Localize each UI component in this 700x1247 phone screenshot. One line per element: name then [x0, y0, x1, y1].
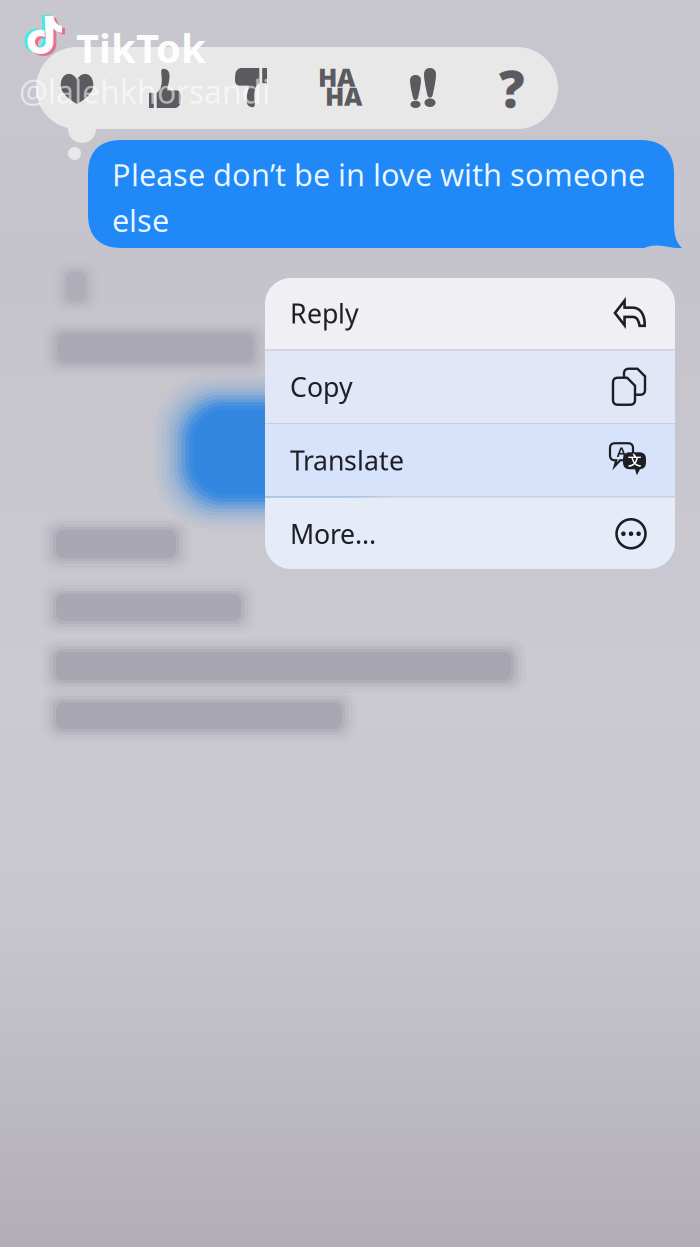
button[interactable]: Translate	[265, 424, 675, 496]
button[interactable]: Thumbs down	[213, 47, 289, 129]
staticText: else	[112, 200, 169, 240]
staticText: More...	[290, 516, 376, 551]
button[interactable]: Thumbs up	[127, 47, 203, 129]
staticText: HA	[325, 79, 362, 113]
staticText: ?	[499, 54, 525, 122]
staticText: @lalehkhorsandi	[19, 70, 270, 112]
staticText: 文	[628, 453, 641, 469]
staticText: A	[616, 442, 626, 461]
button[interactable]: Question	[474, 47, 550, 129]
staticText: Copy	[290, 369, 353, 404]
staticText: Please don’t be in love with someone	[112, 154, 645, 195]
button[interactable]: Love	[39, 47, 115, 129]
staticText: Translate	[290, 442, 404, 478]
staticText: HA	[318, 60, 355, 94]
button[interactable]: Copy	[265, 350, 675, 423]
staticText: TikTok	[76, 21, 206, 74]
button[interactable]: Exclamation	[385, 47, 461, 129]
button[interactable]: Reply	[265, 277, 675, 349]
button[interactable]: More...	[265, 497, 675, 570]
staticText: Reply	[290, 295, 359, 331]
button[interactable]: Haha	[301, 47, 377, 129]
